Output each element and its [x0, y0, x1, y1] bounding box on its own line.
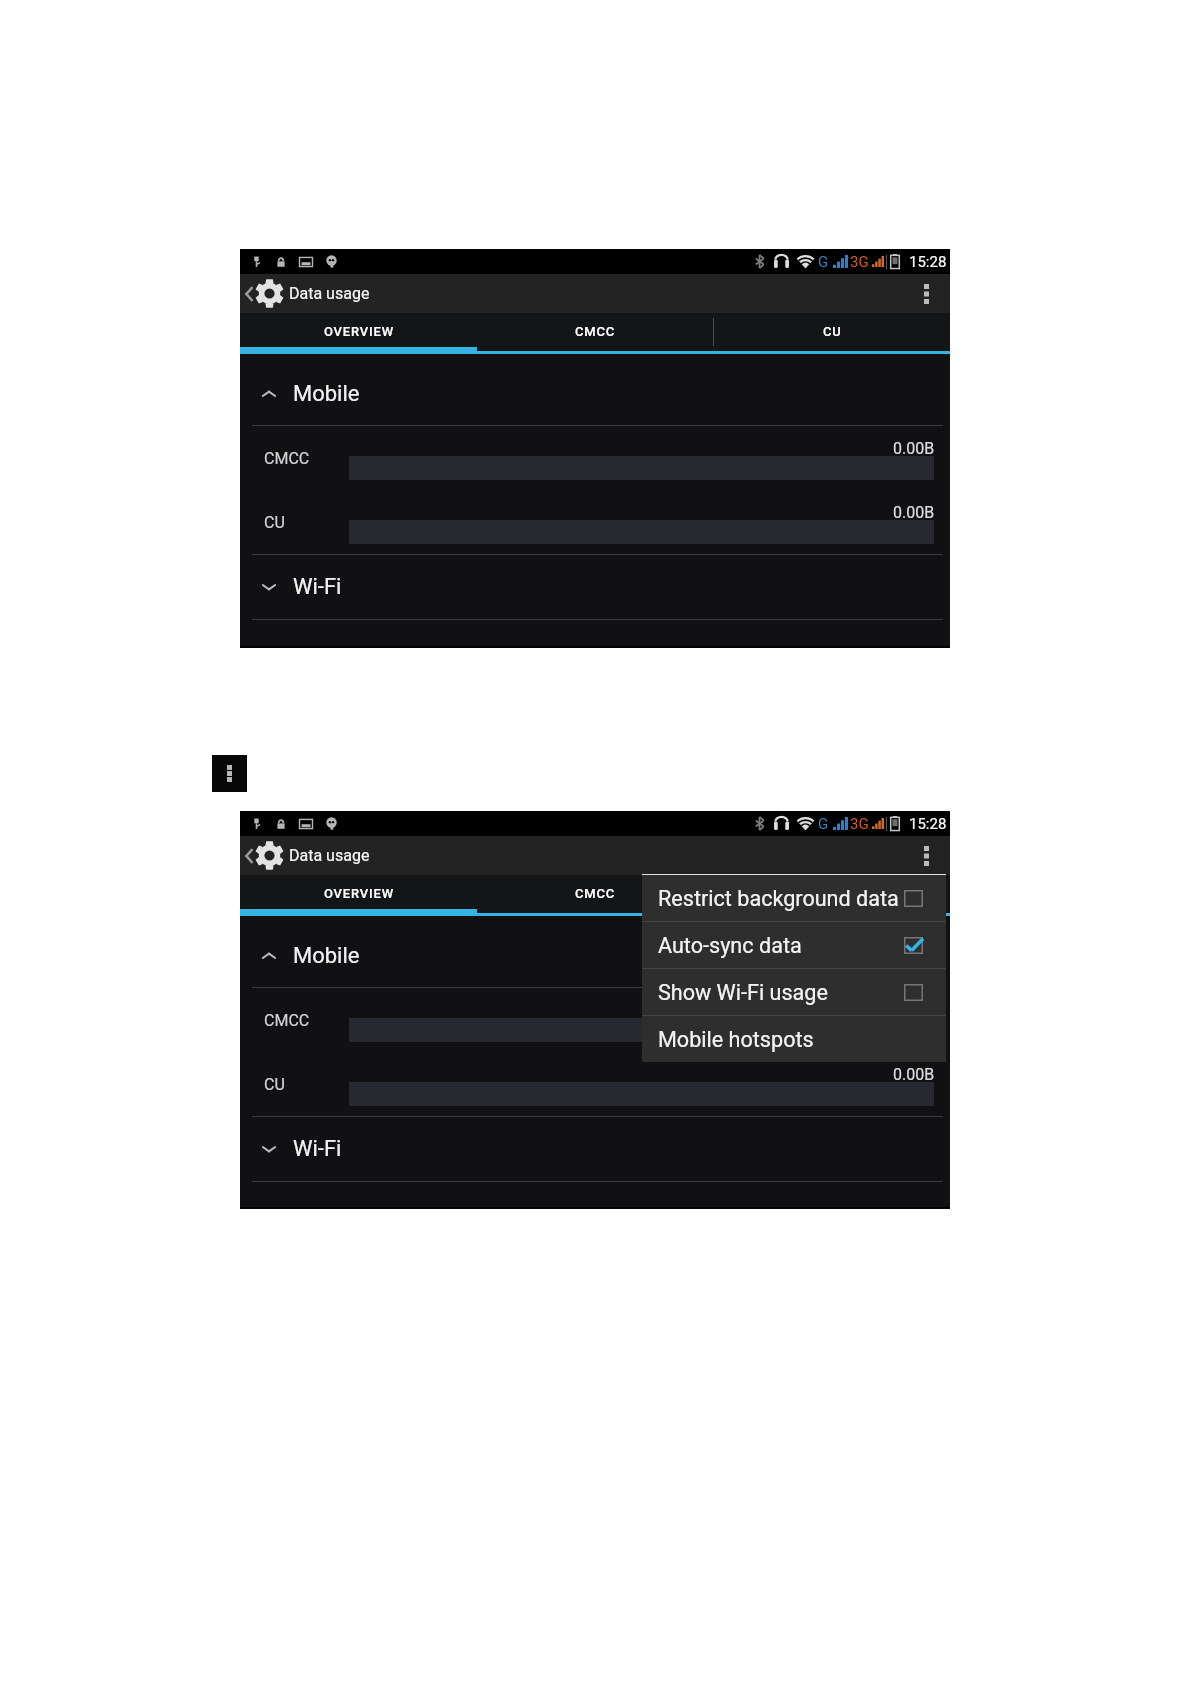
staticText: CU — [264, 513, 285, 532]
button[interactable]: Auto-sync data — [642, 922, 946, 968]
button[interactable]: More options — [908, 274, 944, 313]
button[interactable]: OVERVIEW — [240, 878, 477, 909]
staticText: CMCC — [264, 449, 310, 468]
button[interactable]: 0.00B — [240, 426, 950, 490]
button[interactable]: 0.00B — [240, 1052, 950, 1116]
staticText: Data usage — [289, 284, 370, 303]
button[interactable]: OVERVIEW — [240, 316, 477, 347]
staticText: Mobile — [293, 381, 360, 407]
staticText: 0.00B — [893, 439, 935, 458]
button[interactable]: Show Wi-Fi usage — [642, 969, 946, 1015]
button[interactable]: Navigate up — [240, 836, 285, 875]
staticText: 3G — [850, 815, 869, 833]
staticText: 0.00B — [893, 503, 935, 522]
staticText: Mobile hotspots — [658, 1027, 814, 1052]
staticText: CU — [264, 1075, 285, 1094]
staticText: Wi-Fi — [293, 1136, 342, 1162]
button[interactable]: Mobile — [240, 916, 950, 987]
staticText: CMCC — [264, 1011, 310, 1030]
button[interactable]: Mobile — [240, 354, 950, 425]
button[interactable]: Wi-Fi — [240, 1117, 950, 1181]
button[interactable]: Mobile hotspots — [642, 1016, 946, 1062]
button[interactable]: Navigate up — [240, 274, 285, 313]
staticText: 3G — [850, 253, 869, 271]
staticText: CMCC — [575, 324, 616, 339]
button[interactable]: More options — [212, 755, 247, 792]
staticText: G — [818, 815, 829, 833]
button[interactable]: CMCC — [477, 878, 713, 909]
staticText: OVERVIEW — [324, 886, 394, 901]
staticText: G — [818, 253, 829, 271]
staticText: Auto-sync data — [658, 933, 802, 958]
button[interactable]: 0.00B — [240, 988, 950, 1052]
staticText: 0.00B — [893, 1065, 935, 1084]
staticText: CU — [823, 324, 842, 339]
staticText: 15:28 — [909, 253, 947, 271]
staticText: CMCC — [575, 886, 616, 901]
button[interactable]: CMCC — [477, 316, 713, 347]
staticText: Wi-Fi — [293, 574, 342, 600]
button[interactable]: 0.00B — [240, 490, 950, 554]
staticText: Show Wi-Fi usage — [658, 980, 828, 1005]
button[interactable]: More options — [908, 836, 944, 875]
staticText: Data usage — [289, 846, 370, 865]
staticText: 0.00B — [893, 1001, 935, 1020]
staticText: OVERVIEW — [324, 324, 394, 339]
staticText: Mobile — [293, 943, 360, 969]
button[interactable]: Restrict background data — [642, 875, 946, 921]
staticText: 15:28 — [909, 815, 947, 833]
button[interactable]: CU — [714, 316, 950, 347]
staticText: CU — [823, 886, 842, 901]
staticText: Restrict background data — [658, 886, 899, 911]
button[interactable]: CU — [714, 878, 950, 909]
button[interactable]: Wi-Fi — [240, 555, 950, 619]
